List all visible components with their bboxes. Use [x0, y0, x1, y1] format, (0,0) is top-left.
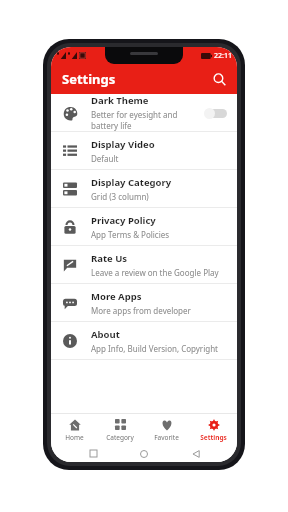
- staticText: Settings: [200, 433, 227, 442]
- staticText: Display Category: [91, 176, 172, 189]
- staticText: Rate Us: [91, 252, 128, 265]
- button[interactable]: Home: [51, 414, 97, 445]
- staticText: More Apps: [91, 290, 142, 303]
- staticText: Leave a review on the Google Play: [91, 267, 219, 278]
- button[interactable]: Settings: [190, 414, 237, 445]
- button[interactable]: Dark Theme: [51, 94, 237, 131]
- button[interactable]: About: [51, 322, 237, 359]
- staticText: App Terms & Policies: [91, 229, 170, 240]
- staticText: Default: [91, 153, 119, 164]
- staticText: Dark Theme: [91, 94, 149, 107]
- staticText: Favorite: [154, 433, 179, 442]
- button[interactable]: Recents: [83, 445, 103, 462]
- button[interactable]: Privacy Policy: [51, 208, 237, 245]
- staticText: More apps from developer: [91, 305, 191, 316]
- staticText: Better for eyesight and battery life: [91, 109, 201, 131]
- staticText: 22:11: [214, 51, 232, 61]
- staticText: Category: [106, 433, 134, 442]
- staticText: Privacy Policy: [91, 214, 156, 227]
- staticText: About: [91, 328, 120, 341]
- button[interactable]: Home: [134, 445, 154, 462]
- button[interactable]: Display Video: [51, 132, 237, 169]
- button[interactable]: Rate Us: [51, 246, 237, 283]
- staticText: Grid (3 column): [91, 191, 149, 202]
- button[interactable]: More Apps: [51, 284, 237, 321]
- staticText: Home: [65, 433, 84, 442]
- staticText: Settings: [62, 70, 116, 88]
- button[interactable]: Search: [207, 67, 231, 91]
- staticText: Display Video: [91, 138, 155, 151]
- staticText: App Info, Build Version, Copyright: [91, 343, 218, 354]
- button[interactable]: Category: [97, 414, 143, 445]
- button[interactable]: Back: [186, 445, 206, 462]
- button[interactable]: Display Category: [51, 170, 237, 207]
- button[interactable]: Dark theme toggle: [201, 107, 227, 119]
- button[interactable]: Favorite: [143, 414, 190, 445]
